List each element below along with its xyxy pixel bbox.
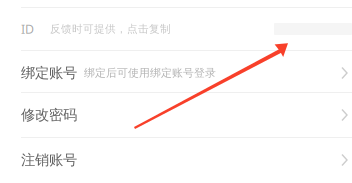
staticText: 绑定后可使用绑定账号登录 <box>84 66 216 80</box>
staticText: 注销账号 <box>21 151 77 169</box>
staticText: ID <box>21 21 34 37</box>
button[interactable]: 绑定账号 <box>0 51 352 92</box>
button[interactable]: 修改密码 <box>0 93 352 137</box>
button[interactable]: ID <box>0 8 352 50</box>
staticText: 绑定账号 <box>21 64 77 82</box>
staticText: 反馈时可提供，点击复制 <box>50 22 171 36</box>
staticText: 修改密码 <box>21 106 77 124</box>
button[interactable]: 注销账号 <box>0 138 352 182</box>
